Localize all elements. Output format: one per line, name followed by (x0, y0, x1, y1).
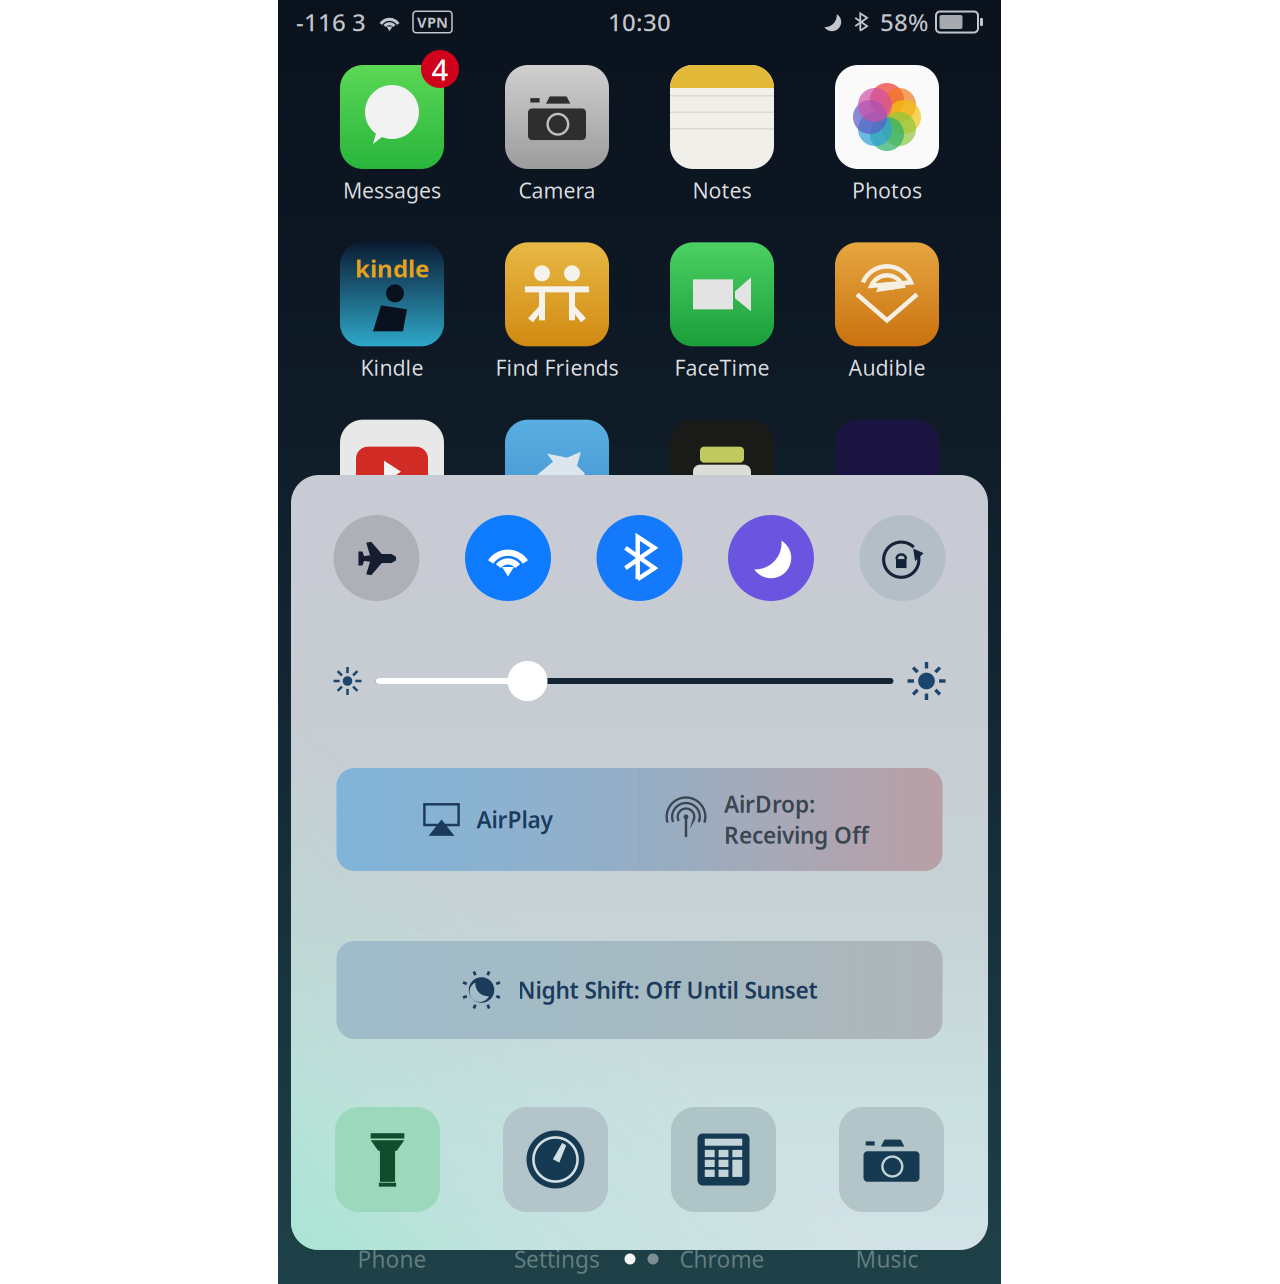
staticText: 4 (431, 49, 448, 88)
staticText: kindle (355, 252, 429, 284)
staticText: Notes (692, 176, 751, 204)
button[interactable]: Shortcut (503, 1107, 608, 1212)
staticText: Receiving Off (724, 820, 869, 850)
staticText: Messages (343, 176, 441, 204)
staticText: -116 3 (296, 6, 366, 38)
staticText: VPN (417, 12, 448, 32)
button[interactable]: AirPlay (336, 768, 638, 871)
button[interactable]: Shortcut (839, 1107, 944, 1212)
staticText: 58% (880, 6, 928, 38)
button[interactable]: Toggle (333, 515, 419, 601)
staticText: Chrome (679, 1244, 764, 1274)
button[interactable]: Toggle (728, 515, 814, 601)
button[interactable]: Toggle (859, 515, 945, 601)
button[interactable]: Toggle (465, 515, 551, 601)
staticText: Photos (852, 176, 922, 204)
staticText: AirPlay (476, 804, 552, 834)
staticText: Find Friends (495, 353, 618, 382)
staticText: FaceTime (674, 353, 769, 382)
staticText: 10:30 (608, 6, 671, 38)
staticText: AirDrop: (724, 789, 815, 819)
staticText: Settings (514, 1244, 600, 1274)
button[interactable]: Shortcut (335, 1107, 440, 1212)
staticText: Kindle (360, 353, 423, 382)
button[interactable]: Toggle (596, 515, 682, 601)
staticText: Night Shift: Off Until Sunset (517, 975, 817, 1005)
button[interactable]: AirDrop: (640, 768, 942, 871)
staticText: Camera (518, 176, 595, 204)
staticText: Phone (357, 1244, 426, 1274)
staticText: Audible (848, 353, 925, 382)
button[interactable]: Shortcut (671, 1107, 776, 1212)
button[interactable]: Night Shift: Off Until Sunset (336, 941, 942, 1039)
staticText: Music (855, 1244, 918, 1274)
